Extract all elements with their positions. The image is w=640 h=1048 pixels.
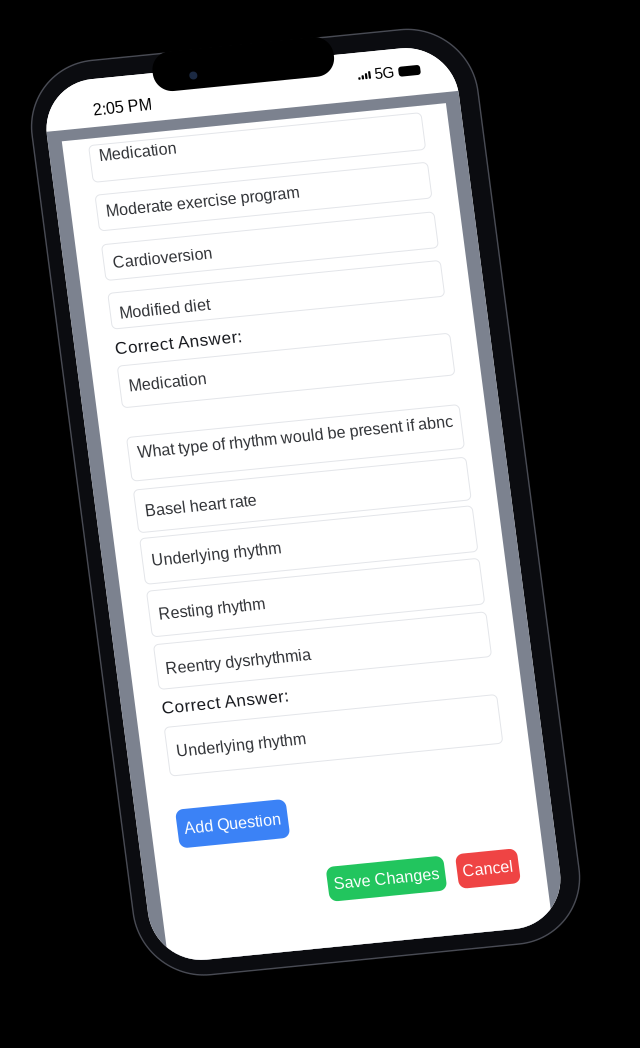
staticText: Save Changes bbox=[188, 816, 294, 834]
staticText: Modified diet bbox=[49, 227, 140, 245]
button[interactable]: Save Changes bbox=[182, 808, 300, 843]
staticText: Correct Answer: bbox=[40, 623, 168, 643]
staticText: Add Question bbox=[47, 746, 144, 764]
staticText: Resting rhythm bbox=[49, 530, 156, 548]
button[interactable]: Add Question bbox=[40, 736, 151, 775]
staticText: Reentry dysrhythmia bbox=[49, 585, 195, 603]
staticText: Moderate exercise program bbox=[49, 124, 243, 142]
staticText: Medication bbox=[49, 68, 127, 86]
staticText: Underlying rhythm bbox=[49, 476, 179, 494]
staticText: Underlying rhythm bbox=[49, 669, 179, 687]
staticText: Medication bbox=[49, 300, 127, 318]
staticText: Correct Answer: bbox=[40, 261, 168, 280]
staticText: What type of rhythm would be present if … bbox=[49, 367, 366, 385]
staticText: Basel heart rate bbox=[49, 426, 161, 444]
staticText: Cardioversion bbox=[49, 176, 149, 194]
